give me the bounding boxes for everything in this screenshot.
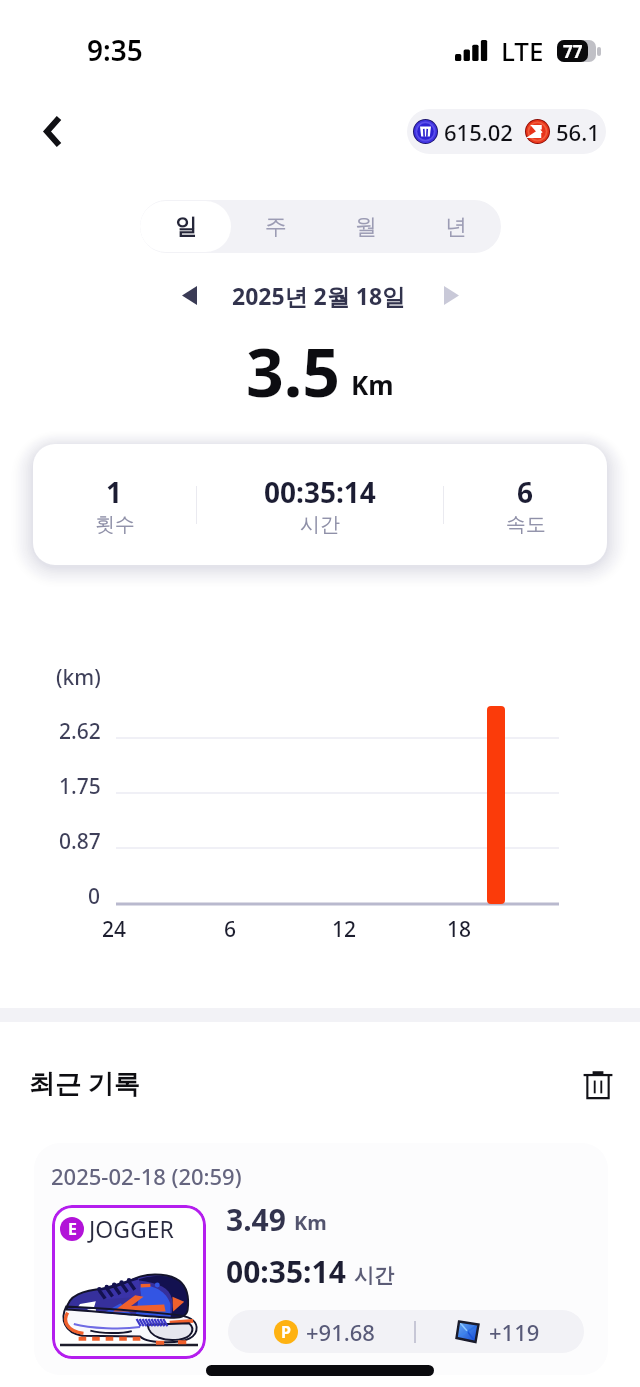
button[interactable]: Previous day [166,272,212,318]
staticText: P [281,1321,291,1343]
staticText: LTE [501,33,544,68]
staticText: 56.1 [556,117,600,147]
staticText: 615.02 [444,117,513,147]
staticText: 최근 기록 [29,1065,140,1101]
button[interactable]: 6 [444,444,607,565]
staticText: 3.49 [226,1199,286,1240]
staticText: 횟수 [95,512,135,537]
button[interactable]: 615.02 [407,109,606,154]
staticText: 6 [517,473,534,511]
staticText: Km [351,367,394,402]
staticText: 2025년 2월 18일 [232,280,406,311]
staticText: 6 [224,915,237,944]
staticText: (km) [56,663,101,692]
button[interactable]: 2025-02-18 (20:59) [34,1143,608,1375]
staticText: 9:35 [87,31,143,69]
staticText: 일 [175,213,197,241]
button[interactable]: Back [26,104,80,158]
staticText: 주 [265,213,287,241]
staticText: 3.5 [246,326,341,416]
staticText: 24 [102,915,127,944]
staticText: 년 [445,213,467,241]
staticText: 18 [447,915,472,944]
staticText: 0 [88,882,101,911]
button[interactable]: 일 [140,201,231,252]
button[interactable]: 1 [33,444,196,565]
button[interactable]: Next day [428,272,474,318]
staticText: 1 [106,473,123,511]
button[interactable]: 00:35:14 [197,444,443,565]
button[interactable]: P [228,1310,584,1353]
button[interactable]: Delete records [574,1061,622,1109]
staticText: 속도 [506,512,546,537]
staticText: 0.87 [59,827,101,856]
staticText: JOGGER [89,1213,174,1244]
staticText: 1.75 [59,772,101,801]
button[interactable]: 년 [411,201,501,252]
staticText: 77 [563,40,583,62]
staticText: 12 [332,915,357,944]
staticText: 2.62 [59,717,101,746]
staticText: 시간 [300,512,340,537]
staticText: 월 [355,213,377,241]
staticText: 00:35:14 [264,473,376,511]
staticText: 2025-02-18 (20:59) [51,1161,242,1191]
staticText: +119 [489,1317,540,1347]
staticText: Km [294,1209,327,1236]
staticText: 00:35:14 [226,1251,346,1292]
staticText: +91.68 [306,1317,375,1347]
button[interactable]: 주 [231,201,321,252]
button[interactable]: 월 [321,201,411,252]
staticText: E [68,1218,77,1240]
staticText: 시간 [354,1263,394,1288]
